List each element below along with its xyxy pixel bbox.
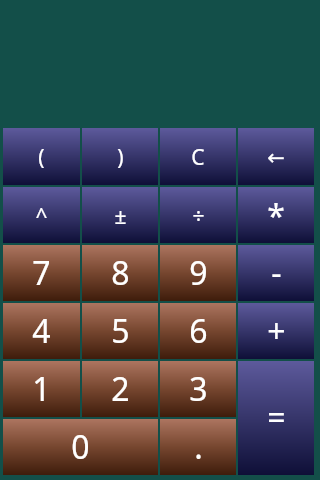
button[interactable]: Backspace [238,128,314,185]
button[interactable]: Decimal point [160,419,236,475]
staticText: 3 [189,367,208,411]
button[interactable]: Minus [238,245,314,301]
button[interactable]: Close bracket [82,128,158,185]
staticText: * [267,194,285,238]
staticText: 2 [111,367,130,411]
button[interactable]: Nine [160,245,236,301]
staticText: ± [114,202,127,231]
button[interactable]: One [3,361,80,417]
staticText: + [267,309,286,353]
button[interactable]: Eight [82,245,158,301]
staticText: ) [117,143,124,172]
staticText: ← [267,146,285,170]
button[interactable]: Plus minus [82,187,158,243]
button[interactable]: Power [3,187,80,243]
staticText: 5 [111,309,130,353]
button[interactable]: Divide [160,187,236,243]
staticText: 4 [32,309,51,353]
staticText: C [191,143,205,172]
staticText: - [271,251,282,295]
button[interactable]: Plus [238,303,314,359]
button[interactable]: Multiply [238,187,314,243]
staticText: ( [38,143,45,172]
button[interactable]: Clear [160,128,236,185]
button[interactable]: Five [82,303,158,359]
button[interactable]: Six [160,303,236,359]
button[interactable]: Equals [238,361,314,475]
button[interactable]: Seven [3,245,80,301]
staticText: 0 [71,425,90,469]
staticText: 7 [32,251,51,295]
staticText: ÷ [192,202,205,231]
button[interactable]: Two [82,361,158,417]
staticText: 8 [111,251,130,295]
staticText: ^ [35,202,48,231]
button[interactable]: Open bracket [3,128,80,185]
staticText: . [194,425,203,469]
button[interactable]: Three [160,361,236,417]
button[interactable]: Zero [3,419,158,475]
button[interactable]: Four [3,303,80,359]
staticText: = [267,395,286,439]
staticText: 1 [32,367,51,411]
staticText: 9 [189,251,208,295]
staticText: 6 [189,309,208,353]
